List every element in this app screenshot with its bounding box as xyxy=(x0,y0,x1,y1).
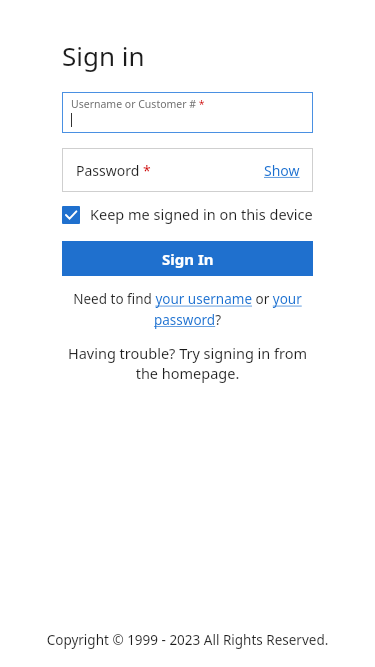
staticText: Username or Customer # * xyxy=(71,97,205,111)
button[interactable]: Password * xyxy=(62,148,313,192)
button[interactable]: Username or Customer # * xyxy=(62,92,313,133)
staticText: Keep me signed in on this device xyxy=(90,204,313,224)
staticText: Show xyxy=(264,161,300,180)
staticText: Need to find your username or your passw… xyxy=(62,290,313,329)
button[interactable]: Need to find your username or your passw… xyxy=(62,290,313,329)
staticText: Copyright © 1999 - 2023 All Rights Reser… xyxy=(0,631,375,649)
staticText: Password * xyxy=(76,161,151,180)
button[interactable]: Keep me signed in checkbox xyxy=(62,204,313,224)
staticText: Sign in xyxy=(62,38,145,73)
other: Keep me signed in checkbox xyxy=(62,206,80,224)
button[interactable]: Show xyxy=(264,161,300,180)
staticText: Having trouble? Try signing in from the … xyxy=(62,343,313,384)
button[interactable]: Sign In xyxy=(62,241,313,276)
staticText: Sign In xyxy=(162,249,214,269)
